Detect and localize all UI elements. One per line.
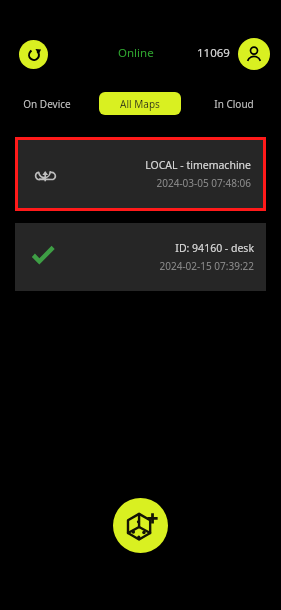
button[interactable]: Sync bbox=[19, 40, 48, 69]
staticText: All Maps bbox=[120, 97, 160, 111]
staticText: 2024-02-15 07:39:22 bbox=[159, 259, 254, 273]
staticText: In Cloud bbox=[214, 97, 254, 111]
staticText: LOCAL - timemachine bbox=[145, 158, 251, 172]
button[interactable]: All Maps bbox=[99, 92, 181, 115]
button[interactable]: ID: 94160 - desk bbox=[15, 223, 266, 291]
button[interactable]: LOCAL - timemachine bbox=[18, 140, 263, 208]
button[interactable]: Account bbox=[238, 38, 270, 70]
staticText: ID: 94160 - desk bbox=[175, 241, 254, 255]
button[interactable]: Online bbox=[118, 45, 154, 61]
button[interactable]: Add new map bbox=[113, 498, 168, 553]
staticText: 2024-03-05 07:48:06 bbox=[156, 176, 251, 190]
staticText: 11069 bbox=[197, 45, 230, 61]
staticText: On Device bbox=[23, 97, 71, 111]
staticText: Online bbox=[118, 45, 154, 61]
button[interactable]: In Cloud bbox=[197, 92, 271, 115]
button[interactable]: On Device bbox=[10, 92, 83, 115]
